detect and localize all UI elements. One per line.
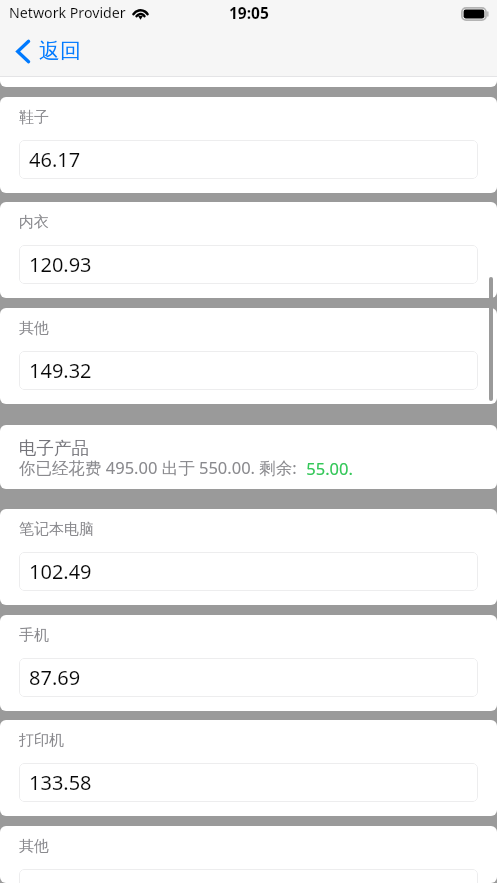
button[interactable]: 46.17: [19, 140, 478, 179]
button[interactable]: 102.49: [19, 552, 478, 591]
button[interactable]: 133.58: [19, 763, 478, 802]
staticText: 内衣: [19, 213, 49, 232]
button[interactable]: 电子产品: [0, 425, 497, 489]
button[interactable]: 120.93: [19, 245, 478, 284]
staticText: 鞋子: [19, 108, 49, 127]
staticText: 你已经花费 495.00 出于 550.00. 剩余:: [19, 456, 302, 479]
button[interactable]: Back: [0, 32, 97, 70]
other: Back: [16, 40, 30, 63]
staticText: 19:05: [229, 2, 269, 23]
button[interactable]: 手机: [0, 615, 497, 711]
button[interactable]: 鞋子: [0, 97, 497, 193]
button[interactable]: 内衣: [0, 202, 497, 298]
button[interactable]: 87.69: [19, 658, 478, 697]
button[interactable]: [19, 869, 478, 883]
staticText: 87.69: [29, 664, 81, 691]
staticText: 笔记本电脑: [19, 520, 94, 539]
staticText: 打印机: [19, 731, 64, 750]
staticText: 返回: [39, 38, 81, 64]
other: Battery full: [461, 7, 489, 21]
staticText: 149.32: [29, 357, 92, 384]
button[interactable]: 打印机: [0, 720, 497, 816]
button[interactable]: 其他: [0, 308, 497, 404]
staticText: 其他: [19, 319, 49, 338]
staticText: 手机: [19, 626, 49, 645]
staticText: 电子产品: [19, 437, 89, 459]
staticText: 46.17: [29, 146, 81, 173]
staticText: 102.49: [29, 558, 92, 585]
staticText: 其他: [19, 837, 49, 856]
button[interactable]: 其他: [0, 826, 497, 883]
staticText: Network Provider: [9, 3, 126, 22]
other: Wi-Fi signal: [131, 4, 150, 19]
staticText: 133.58: [29, 769, 92, 796]
button[interactable]: 笔记本电脑: [0, 509, 497, 605]
staticText: 55.00.: [302, 457, 353, 479]
staticText: 120.93: [29, 251, 92, 278]
button[interactable]: 149.32: [19, 351, 478, 390]
